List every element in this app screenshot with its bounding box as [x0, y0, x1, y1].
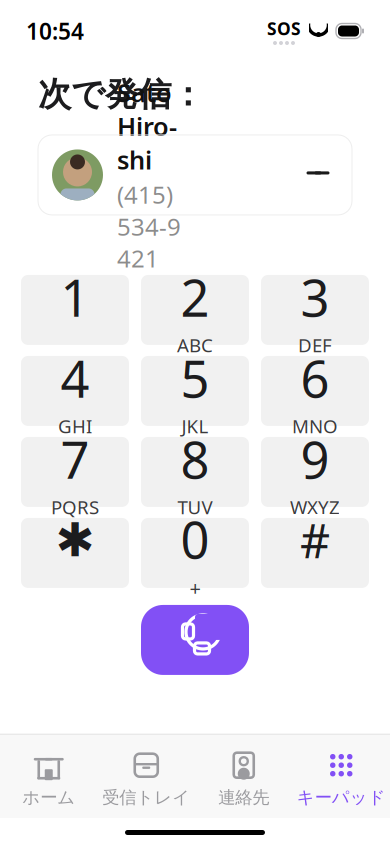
staticText: 6 [300, 344, 329, 412]
staticText: 受信トレイ [102, 787, 190, 808]
staticText: JKL [181, 414, 208, 438]
button[interactable]: ✱ [21, 518, 129, 588]
staticText: DEF [298, 333, 332, 357]
button[interactable]: ホーム [0, 747, 97, 812]
staticText: 5 [180, 344, 209, 412]
staticText: キーパッド [297, 787, 386, 808]
staticText: 連絡先 [218, 787, 269, 808]
staticText: 3 [300, 263, 329, 331]
button[interactable]: 連絡先 [195, 747, 292, 812]
button[interactable]: 2 [141, 275, 249, 345]
staticText: 1 [60, 263, 89, 331]
button[interactable]: # [261, 518, 369, 588]
staticText: + [189, 575, 200, 601]
button[interactable]: 8 [141, 437, 249, 507]
staticText: 7 [60, 425, 89, 493]
button[interactable]: 受信トレイ [97, 747, 195, 812]
staticText: GHI [58, 414, 92, 438]
button[interactable]: 7 [21, 437, 129, 507]
staticText: 次で発信： [38, 74, 204, 115]
button[interactable]: 1 [21, 275, 129, 345]
button[interactable]: キーパッド [292, 747, 390, 812]
staticText: # [300, 509, 330, 571]
button[interactable]: 6 [261, 356, 369, 426]
staticText: (415) 534-9421 [117, 179, 181, 274]
staticText: ABC [177, 333, 213, 357]
staticText: PQRS [51, 495, 99, 519]
button[interactable]: 3 [261, 275, 369, 345]
button[interactable]: Call [141, 605, 249, 675]
staticText: 10:54 [26, 16, 84, 46]
staticText: MNO [292, 414, 338, 438]
staticText: 9 [300, 425, 329, 493]
staticText: Sato Hiroshi [117, 76, 177, 177]
staticText: WXYZ [290, 495, 340, 519]
button[interactable]: 5 [141, 356, 249, 426]
staticText: TUV [177, 495, 212, 519]
button[interactable]: 9 [261, 437, 369, 507]
button[interactable]: Sato Hiroshi [38, 135, 352, 215]
staticText: 8 [180, 425, 209, 493]
staticText: 2 [180, 263, 209, 331]
button[interactable]: 4 [21, 356, 129, 426]
staticText: ホーム [22, 787, 75, 808]
staticText: 0 [180, 505, 209, 573]
staticText: ✱ [55, 514, 94, 567]
button[interactable]: 0 [141, 518, 249, 588]
staticText: SOS [267, 17, 301, 40]
staticText: 4 [60, 344, 89, 412]
